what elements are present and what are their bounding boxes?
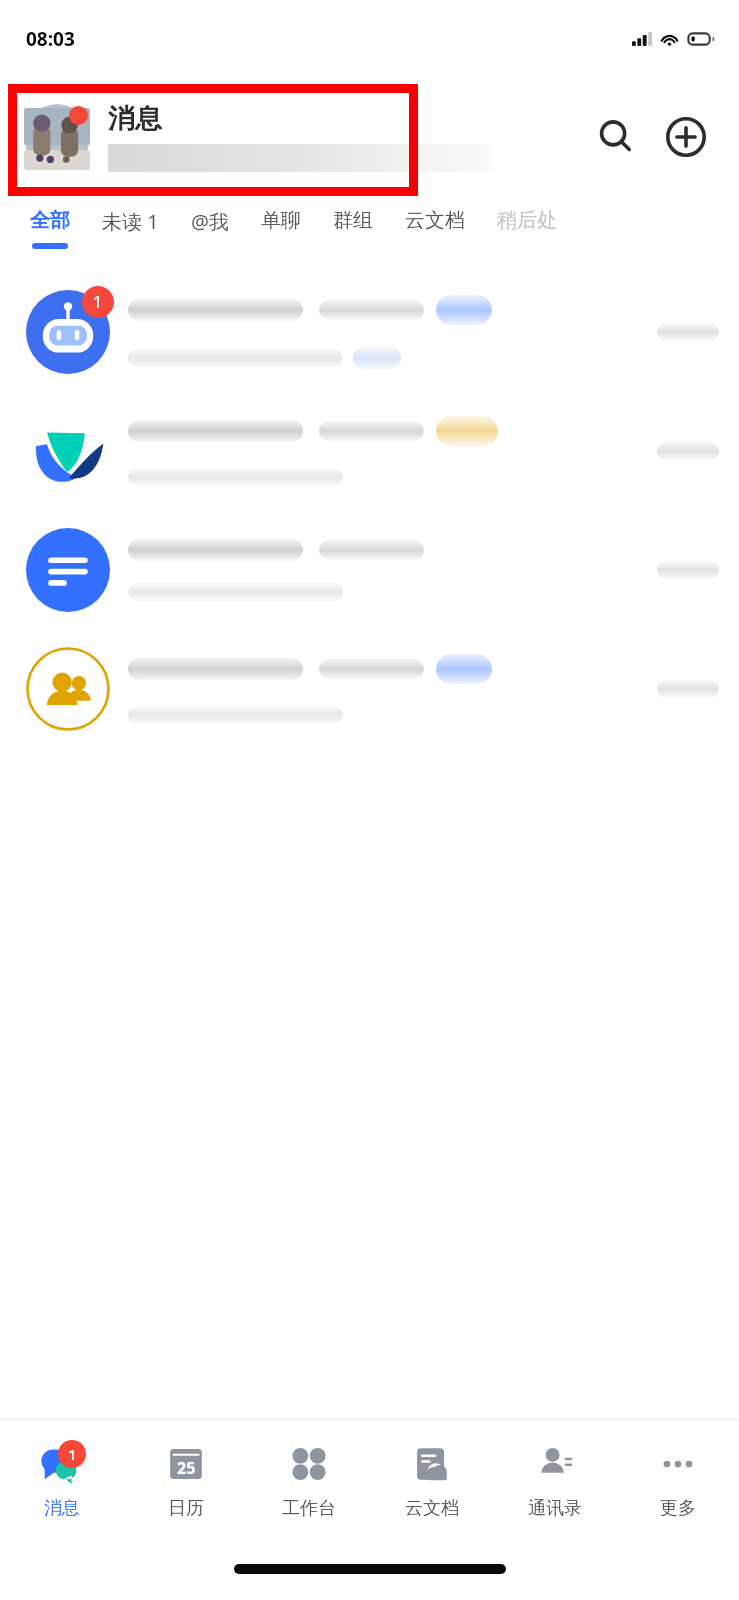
- button[interactable]: [0, 629, 739, 748]
- other: Cloud documents: [408, 1440, 456, 1488]
- button[interactable]: Contacts: [493, 1420, 616, 1538]
- button[interactable]: 单聊: [245, 196, 317, 243]
- button[interactable]: [0, 391, 739, 510]
- button[interactable]: Workspace: [247, 1420, 370, 1538]
- staticText: 全部: [30, 208, 70, 233]
- staticText: 25: [177, 1457, 196, 1479]
- staticText: 1: [68, 1444, 77, 1464]
- button[interactable]: 稍后处: [481, 196, 573, 243]
- button[interactable]: 未读 1: [86, 196, 175, 245]
- button[interactable]: Cloud documents: [370, 1420, 493, 1538]
- staticText: 群组: [333, 208, 373, 233]
- staticText: 通讯录: [528, 1497, 582, 1520]
- staticText: 日历: [168, 1497, 204, 1520]
- other: Calendar: [162, 1440, 210, 1488]
- staticText: 稍后处: [497, 208, 557, 233]
- staticText: @我: [191, 208, 229, 235]
- button[interactable]: More: [616, 1420, 739, 1538]
- other: Workspace: [285, 1440, 333, 1488]
- button[interactable]: Add: [657, 108, 715, 166]
- other: Contacts: [531, 1440, 579, 1488]
- staticText: 更多: [660, 1497, 696, 1520]
- button[interactable]: @我: [175, 196, 245, 245]
- staticText: 云文档: [405, 1497, 459, 1520]
- button[interactable]: 全部: [14, 196, 86, 249]
- staticText: 消息: [108, 102, 162, 136]
- button[interactable]: Profile avatar: [24, 104, 90, 170]
- button[interactable]: 1: [0, 272, 739, 391]
- staticText: 单聊: [261, 208, 301, 233]
- staticText: 08:03: [26, 26, 75, 52]
- button[interactable]: 云文档: [389, 196, 481, 243]
- staticText: 工作台: [282, 1497, 336, 1520]
- button[interactable]: 1: [0, 1420, 124, 1538]
- staticText: 消息: [44, 1497, 80, 1520]
- staticText: 1: [93, 291, 103, 313]
- button[interactable]: [0, 510, 739, 629]
- button[interactable]: Calendar: [124, 1420, 247, 1538]
- button[interactable]: 群组: [317, 196, 389, 243]
- button[interactable]: Search: [587, 108, 645, 166]
- staticText: 未读 1: [102, 208, 159, 235]
- staticText: 云文档: [405, 208, 465, 233]
- other: More: [654, 1440, 702, 1488]
